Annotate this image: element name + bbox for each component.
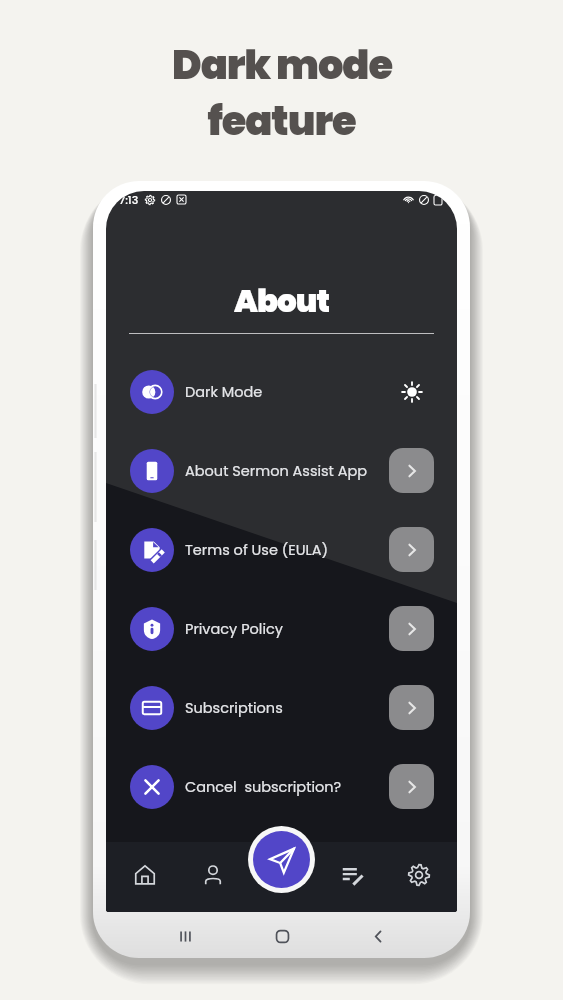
staticText: 7:13	[119, 192, 139, 207]
button[interactable]: Cancel subscription?	[106, 747, 457, 826]
button[interactable]: Send	[253, 831, 310, 888]
staticText: About	[106, 279, 457, 322]
button[interactable]: Privacy Policy	[106, 589, 457, 668]
staticText: Privacy Policy	[185, 619, 283, 639]
button[interactable]: Open Privacy Policy	[389, 606, 434, 651]
staticText: Cancel subscription?	[185, 777, 342, 797]
button[interactable]: Open Subscriptions	[389, 685, 434, 730]
button[interactable]: Home	[123, 853, 167, 897]
button[interactable]: Notes	[330, 853, 374, 897]
staticText: Terms of Use (EULA)	[185, 540, 329, 560]
button[interactable]: Home	[263, 918, 301, 954]
staticText: feature	[207, 93, 356, 149]
button[interactable]: Recents	[166, 918, 204, 954]
staticText: Dark mode	[172, 37, 392, 93]
button[interactable]: Profile	[191, 853, 235, 897]
button[interactable]: Dark Mode	[106, 352, 457, 431]
button[interactable]: Terms of Use (EULA)	[106, 510, 457, 589]
button[interactable]: Open Cancel subscription?	[389, 764, 434, 809]
button[interactable]: Back	[359, 918, 397, 954]
staticText: Dark Mode	[185, 382, 263, 402]
button[interactable]: Open About Sermon Assist App	[389, 448, 434, 493]
staticText: Subscriptions	[185, 698, 283, 718]
button[interactable]: Settings	[397, 853, 441, 897]
staticText: About Sermon Assist App	[185, 461, 368, 481]
button[interactable]: Toggle brightness	[389, 369, 434, 414]
button[interactable]: Open Terms of Use (EULA)	[389, 527, 434, 572]
button[interactable]: Subscriptions	[106, 668, 457, 747]
button[interactable]: About Sermon Assist App	[106, 431, 457, 510]
